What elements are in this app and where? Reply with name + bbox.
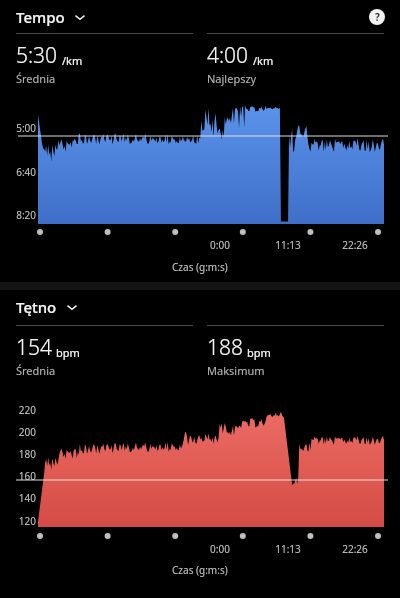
staticText: bpm xyxy=(247,345,271,360)
staticText: 8:20 xyxy=(6,208,36,222)
staticText: Czas (g:m:s) xyxy=(172,260,228,274)
staticText: Tętno xyxy=(16,297,57,317)
staticText: 22:26 xyxy=(155,238,400,252)
staticText: ? xyxy=(375,10,380,24)
staticText: 5:00 xyxy=(6,121,36,135)
staticText: 120 xyxy=(6,514,36,528)
staticText: Tempo xyxy=(16,7,65,27)
staticText: 33:40 xyxy=(223,238,400,252)
staticText: Czas (g:m:s) xyxy=(172,563,228,577)
staticText: 44:53 xyxy=(290,238,400,252)
staticText: 188 xyxy=(207,333,243,362)
staticText: 0:00 xyxy=(20,542,400,556)
staticText: 6:40 xyxy=(6,165,36,179)
staticText: Średnia xyxy=(16,363,56,378)
staticText: 0:00 xyxy=(20,238,400,252)
button[interactable]: 188 xyxy=(207,325,384,378)
button[interactable]: Pomoc xyxy=(366,6,388,28)
button[interactable]: Tempo xyxy=(16,7,87,27)
button[interactable]: Tętno xyxy=(16,297,79,317)
staticText: 56:06 xyxy=(358,542,400,556)
staticText: 140 xyxy=(6,491,36,505)
staticText: 5:30 xyxy=(16,41,58,70)
staticText: 44:53 xyxy=(290,542,400,556)
staticText: 4:00 xyxy=(207,41,249,70)
staticText: 11:13 xyxy=(88,542,400,556)
staticText: 180 xyxy=(6,447,36,461)
staticText: 56:06 xyxy=(358,238,400,252)
staticText: Maksimum xyxy=(207,363,265,378)
staticText: 154 xyxy=(16,333,52,362)
staticText: 160 xyxy=(6,469,36,483)
staticText: 33:40 xyxy=(223,542,400,556)
staticText: Najlepszy xyxy=(207,71,257,86)
button[interactable]: 4:00 xyxy=(207,33,384,86)
staticText: 22:26 xyxy=(155,542,400,556)
staticText: 220 xyxy=(6,403,36,417)
button[interactable]: 154 xyxy=(16,325,193,378)
staticText: Średnia xyxy=(16,71,56,86)
button[interactable]: 5:30 xyxy=(16,33,193,86)
staticText: /km xyxy=(253,53,274,68)
staticText: 200 xyxy=(6,425,36,439)
staticText: bpm xyxy=(56,345,80,360)
staticText: /km xyxy=(62,53,83,68)
staticText: 11:13 xyxy=(88,238,400,252)
